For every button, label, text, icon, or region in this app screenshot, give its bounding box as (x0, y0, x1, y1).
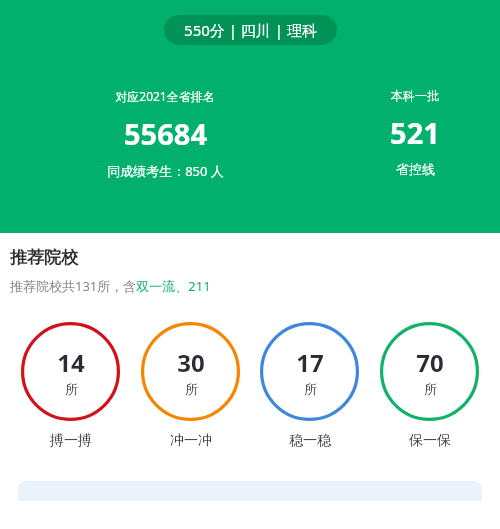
button[interactable]: 14 (21, 322, 120, 450)
staticText: 55684 (124, 114, 207, 153)
staticText: 所 (185, 381, 198, 397)
staticText: 稳一稳 (289, 432, 331, 450)
staticText: 推荐院校共131所，含双一流、211 (10, 277, 211, 295)
staticText: 同成绩考生：850 人 (107, 162, 224, 180)
staticText: 所 (424, 381, 437, 397)
staticText: 推荐院校 (10, 247, 78, 268)
staticText: 搏一搏 (50, 432, 92, 450)
staticText: 本科一批 (391, 88, 439, 103)
button[interactable]: 17 (260, 322, 359, 450)
staticText: 所 (304, 381, 317, 397)
staticText: 521 (390, 113, 440, 152)
button[interactable]: 550分 | 四川 | 理科 (164, 15, 337, 45)
staticText: 所 (65, 381, 78, 397)
staticText: 14 (57, 346, 85, 379)
staticText: 30 (177, 346, 205, 379)
button[interactable]: 30 (141, 322, 240, 450)
button[interactable]: 70 (380, 322, 479, 450)
staticText: 省控线 (396, 161, 435, 177)
staticText: 对应2021全省排名 (115, 88, 215, 104)
staticText: 17 (296, 346, 324, 379)
staticText: 550分 | 四川 | 理科 (184, 20, 317, 40)
staticText: 保一保 (409, 432, 451, 450)
staticText: 冲一冲 (170, 432, 212, 450)
staticText: 70 (416, 346, 444, 379)
